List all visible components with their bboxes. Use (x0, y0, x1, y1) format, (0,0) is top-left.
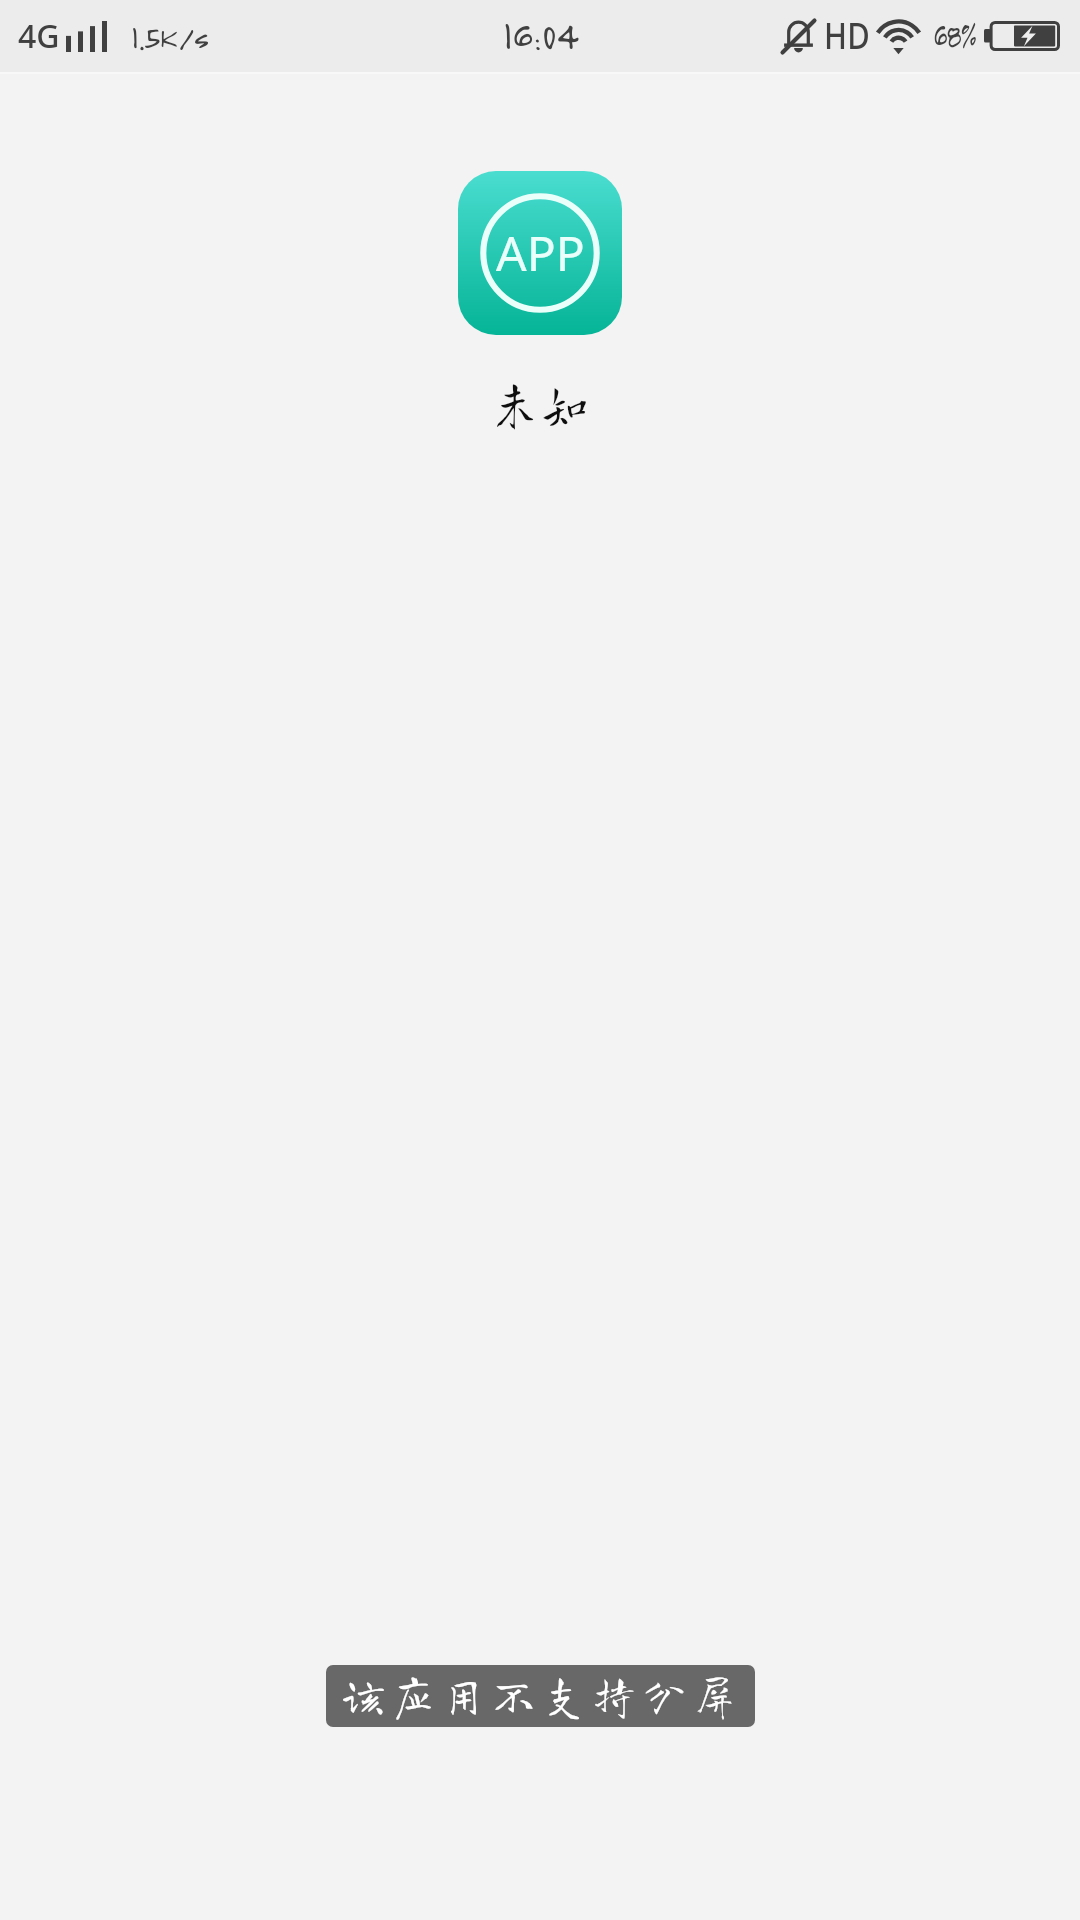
other: Battery 68 percent, charging (984, 18, 1060, 54)
staticText: APP (496, 220, 585, 285)
staticText: 4G (18, 14, 60, 58)
button[interactable]: Open app 未知 (458, 171, 622, 429)
other: Silent mode (781, 19, 816, 54)
button[interactable]: 该应用不支持分屏 (326, 1665, 755, 1727)
other: Signal strength (66, 21, 107, 52)
staticText: HD (824, 10, 870, 60)
staticText: 68% (933, 11, 976, 57)
staticText: 未知 (493, 375, 593, 429)
staticText: 该应用不支持分屏 (342, 1672, 744, 1717)
other: Wi-Fi (878, 21, 919, 53)
staticText: 1.5K/s (131, 17, 209, 56)
staticText: 16:04 (503, 11, 578, 59)
